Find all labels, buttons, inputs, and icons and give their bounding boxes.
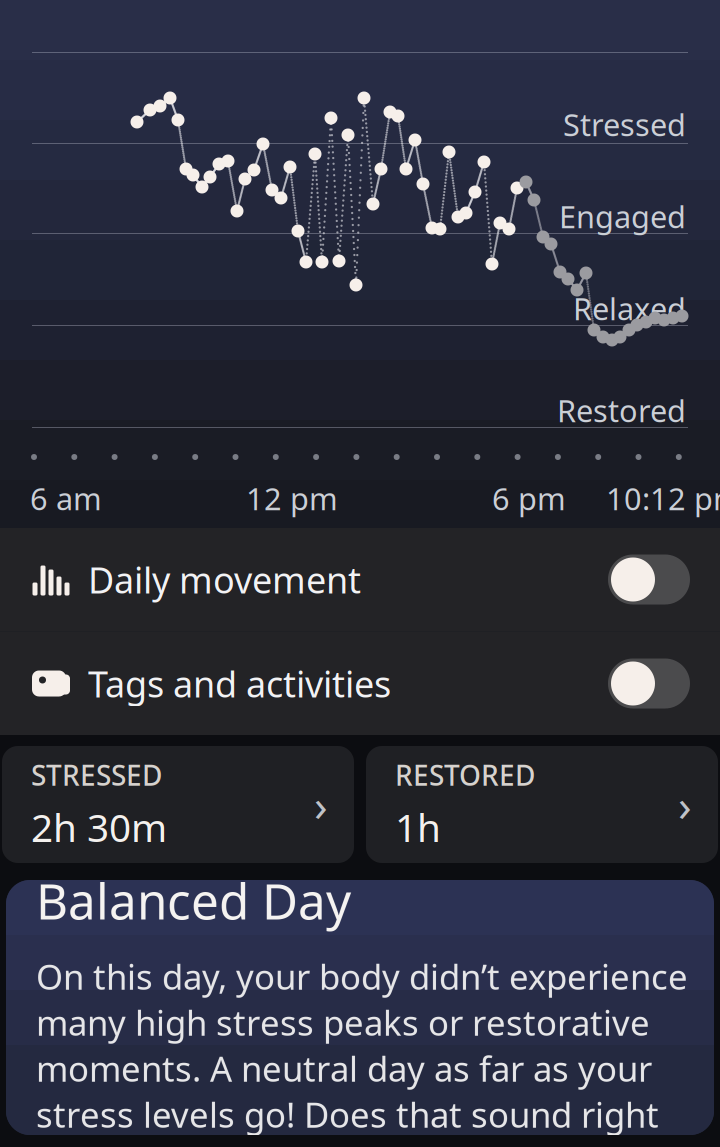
- staticText: On this day, your body didn’t experience…: [36, 953, 688, 1147]
- staticText: Engaged: [559, 196, 686, 237]
- staticText: 6 am: [30, 478, 102, 519]
- staticText: 12 pm: [246, 478, 338, 519]
- staticText: ›: [678, 775, 692, 834]
- staticText: STRESSED: [31, 756, 162, 793]
- staticText: 2h 30m: [31, 801, 167, 853]
- staticText: 10:12 pm: [606, 478, 720, 519]
- staticText: Tags and activities: [88, 660, 391, 707]
- staticText: Stressed: [563, 104, 686, 145]
- button[interactable]: RESTORED: [366, 746, 718, 863]
- staticText: 1h: [395, 801, 441, 853]
- staticText: Balanced Day: [36, 868, 351, 933]
- staticText: Restored: [557, 390, 686, 431]
- staticText: Daily movement: [88, 556, 361, 603]
- button[interactable]: Tags and activities: [0, 632, 720, 735]
- staticText: ›: [314, 775, 328, 834]
- button[interactable]: Daily movement: [0, 528, 720, 631]
- staticText: RESTORED: [395, 756, 535, 793]
- button[interactable]: STRESSED: [2, 746, 354, 863]
- staticText: 6 pm: [492, 478, 566, 519]
- staticText: Relaxed: [573, 288, 686, 329]
